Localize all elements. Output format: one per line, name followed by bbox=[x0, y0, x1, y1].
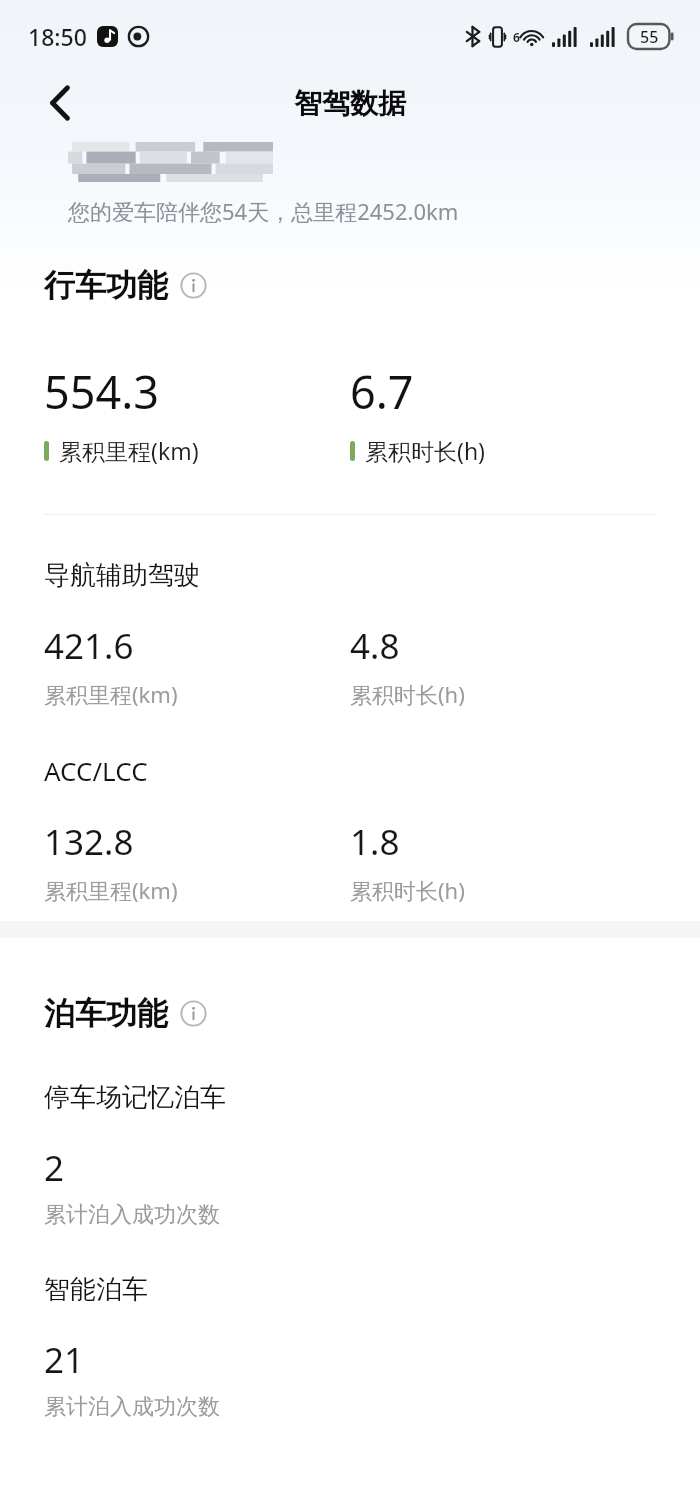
button[interactable]: 泊车功能 bbox=[44, 994, 207, 1033]
staticText: 累积里程(km) bbox=[44, 679, 178, 709]
staticText: 累积时长(h) bbox=[350, 875, 465, 905]
staticText: 您的爱车陪伴您54天，总里程2452.0km bbox=[68, 196, 459, 226]
button[interactable]: Back bbox=[36, 79, 84, 127]
staticText: 421.6 bbox=[44, 622, 134, 670]
staticText: 55 bbox=[640, 26, 659, 48]
staticText: 累积里程(km) bbox=[44, 875, 178, 905]
staticText: 导航辅助驾驶 bbox=[44, 559, 200, 592]
staticText: 4.8 bbox=[350, 622, 400, 670]
staticText: 21 bbox=[44, 1336, 85, 1384]
staticText: 泊车功能 bbox=[44, 994, 168, 1033]
staticText: 累积时长(h) bbox=[350, 679, 465, 709]
staticText: 停车场记忆泊车 bbox=[44, 1081, 226, 1114]
staticText: ACC/LCC bbox=[44, 753, 148, 788]
staticText: 2 bbox=[44, 1144, 65, 1192]
staticText: 累积时长(h) bbox=[365, 435, 486, 466]
staticText: 6 bbox=[513, 29, 520, 45]
other: Info bbox=[180, 272, 207, 299]
button[interactable]: 行车功能 bbox=[44, 266, 207, 305]
staticText: 行车功能 bbox=[44, 266, 168, 305]
staticText: 554.3 bbox=[44, 361, 160, 422]
staticText: 智能泊车 bbox=[44, 1273, 148, 1306]
staticText: 累计泊入成功次数 bbox=[44, 1393, 220, 1421]
other: Info bbox=[180, 1000, 207, 1027]
staticText: 智驾数据 bbox=[294, 86, 406, 121]
staticText: 1.8 bbox=[350, 818, 400, 866]
staticText: 18:50 bbox=[28, 21, 87, 52]
staticText: 132.8 bbox=[44, 818, 134, 866]
staticText: 6.7 bbox=[350, 361, 414, 422]
staticText: 累计泊入成功次数 bbox=[44, 1201, 220, 1229]
staticText: 累积里程(km) bbox=[59, 435, 199, 466]
